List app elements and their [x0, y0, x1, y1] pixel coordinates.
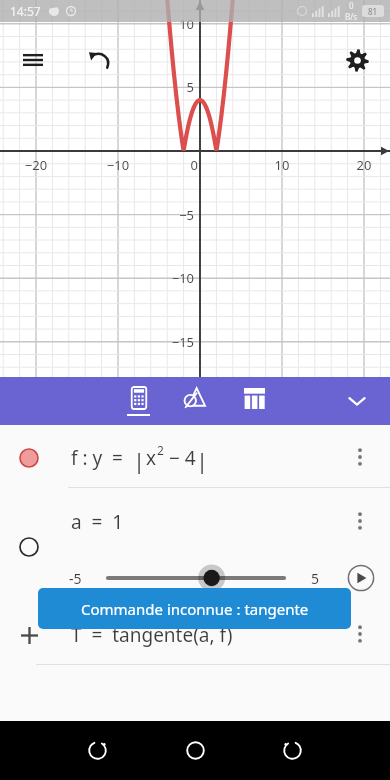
staticText: −20 — [16, 156, 56, 174]
button[interactable]: Toggle visibility of a — [19, 537, 39, 557]
staticText: 10 — [152, 15, 194, 33]
button[interactable]: Collapse — [335, 377, 379, 425]
button[interactable]: Toggle visibility of f — [0, 425, 390, 488]
button[interactable]: Table — [230, 377, 278, 425]
staticText: 81 — [368, 6, 378, 17]
staticText: 5 — [152, 78, 194, 96]
button[interactable]: Back — [272, 730, 312, 770]
staticText: x — [146, 445, 157, 471]
staticText: a = 1 — [71, 509, 124, 535]
staticText: 10 — [262, 156, 302, 174]
button[interactable]: Commande inconnue : tangente — [38, 588, 351, 629]
staticText: | — [196, 445, 209, 475]
staticText: f : y = — [71, 445, 133, 471]
button[interactable]: More options — [349, 446, 371, 468]
staticText: T = tangente(a, f) — [71, 622, 233, 648]
staticText: Commande inconnue : tangente — [81, 599, 309, 619]
staticText: − 4 — [164, 445, 196, 471]
button[interactable]: Add input — [0, 602, 390, 665]
staticText: 0 — [349, 0, 354, 11]
button[interactable]: Menu — [13, 40, 53, 80]
button[interactable]: Home — [175, 730, 215, 770]
button[interactable]: Recents — [77, 730, 117, 770]
staticText: 20 — [344, 156, 384, 174]
staticText: 5 — [311, 569, 320, 588]
staticText: −10 — [98, 156, 138, 174]
button[interactable]: Slider a — [104, 564, 288, 592]
staticText: -5 — [69, 569, 82, 588]
button[interactable]: Geometry — [170, 377, 218, 425]
button[interactable]: Add input — [18, 624, 40, 646]
staticText: 0 — [178, 156, 198, 174]
button[interactable]: More options — [349, 623, 371, 645]
staticText: −10 — [152, 269, 194, 287]
staticText: −15 — [152, 333, 194, 351]
button[interactable]: Toggle visibility of f — [19, 448, 39, 468]
button[interactable]: More options — [349, 510, 371, 532]
staticText: −5 — [152, 206, 194, 224]
button[interactable]: Settings — [337, 40, 377, 80]
button[interactable]: Toggle visibility of a — [0, 488, 390, 602]
staticText: B/s — [345, 11, 358, 22]
staticText: | — [133, 445, 146, 475]
staticText: 2 — [157, 442, 164, 458]
staticText: 14:57 — [10, 3, 41, 19]
button[interactable]: Graphing calculator — [114, 377, 162, 425]
button[interactable]: Undo — [80, 40, 120, 80]
button[interactable]: Animate slider — [347, 564, 375, 592]
